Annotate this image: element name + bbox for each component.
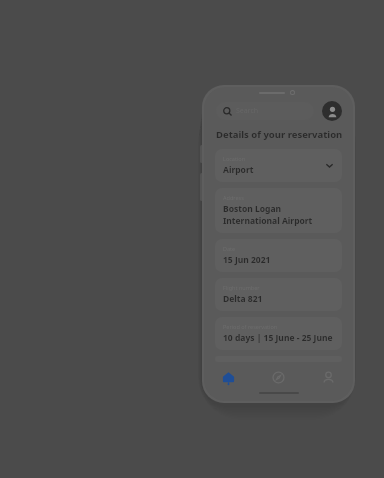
staticText: Airport — [223, 164, 254, 176]
button[interactable]: Flight number — [215, 278, 342, 311]
button[interactable]: Search — [216, 102, 314, 120]
button[interactable]: Profile — [322, 101, 342, 121]
staticText: Details of your reservation — [216, 128, 343, 141]
button[interactable]: Address — [215, 188, 342, 233]
staticText: Boston Logan International Airport — [223, 203, 334, 227]
button[interactable]: Period of reservation — [215, 317, 342, 350]
button[interactable]: Home — [204, 362, 253, 392]
staticText: Delta 821 — [223, 293, 263, 305]
button[interactable]: Location — [215, 149, 342, 182]
staticText: 10 days | 15 June - 25 June — [223, 332, 333, 344]
staticText: 15 Jun 2021 — [223, 254, 271, 266]
button[interactable]: Date — [215, 239, 342, 272]
